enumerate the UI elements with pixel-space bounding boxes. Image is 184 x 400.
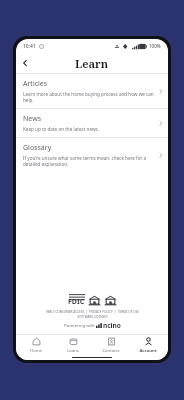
- staticText: Learn more about the home buying process…: [23, 91, 155, 103]
- button[interactable]: Back: [16, 54, 34, 72]
- staticText: FDIC: [68, 297, 85, 307]
- staticText: 10:41: [23, 43, 36, 50]
- staticText: Learn: [75, 56, 109, 71]
- staticText: Partnering with: [64, 323, 96, 329]
- button[interactable]: Articles: [16, 74, 168, 108]
- staticText: Contacts: [102, 348, 120, 354]
- staticText: Glossary: [23, 143, 52, 153]
- button[interactable]: Loans: [55, 337, 91, 354]
- staticText: Articles: [23, 79, 48, 89]
- button[interactable]: News: [16, 109, 168, 137]
- staticText: 100%: [149, 43, 161, 49]
- staticText: Keep up to date on the latest news.: [23, 126, 99, 132]
- staticText: Account: [139, 348, 157, 354]
- staticText: NMLS CONSUMER ACCESS | PRIVACY POLICY | …: [46, 310, 139, 314]
- staticText: News: [23, 114, 41, 124]
- staticText: ncino: [103, 321, 121, 330]
- staticText: Home: [30, 348, 42, 354]
- button[interactable]: Contacts: [93, 337, 129, 354]
- button[interactable]: Home: [18, 337, 54, 354]
- staticText: Loans: [67, 348, 79, 354]
- button[interactable]: Glossary: [16, 138, 168, 172]
- staticText: If you're unsure what some terms mean, c…: [23, 155, 155, 167]
- staticText: SOFTWARE LICENSES: [77, 315, 108, 319]
- button[interactable]: Account: [130, 337, 166, 354]
